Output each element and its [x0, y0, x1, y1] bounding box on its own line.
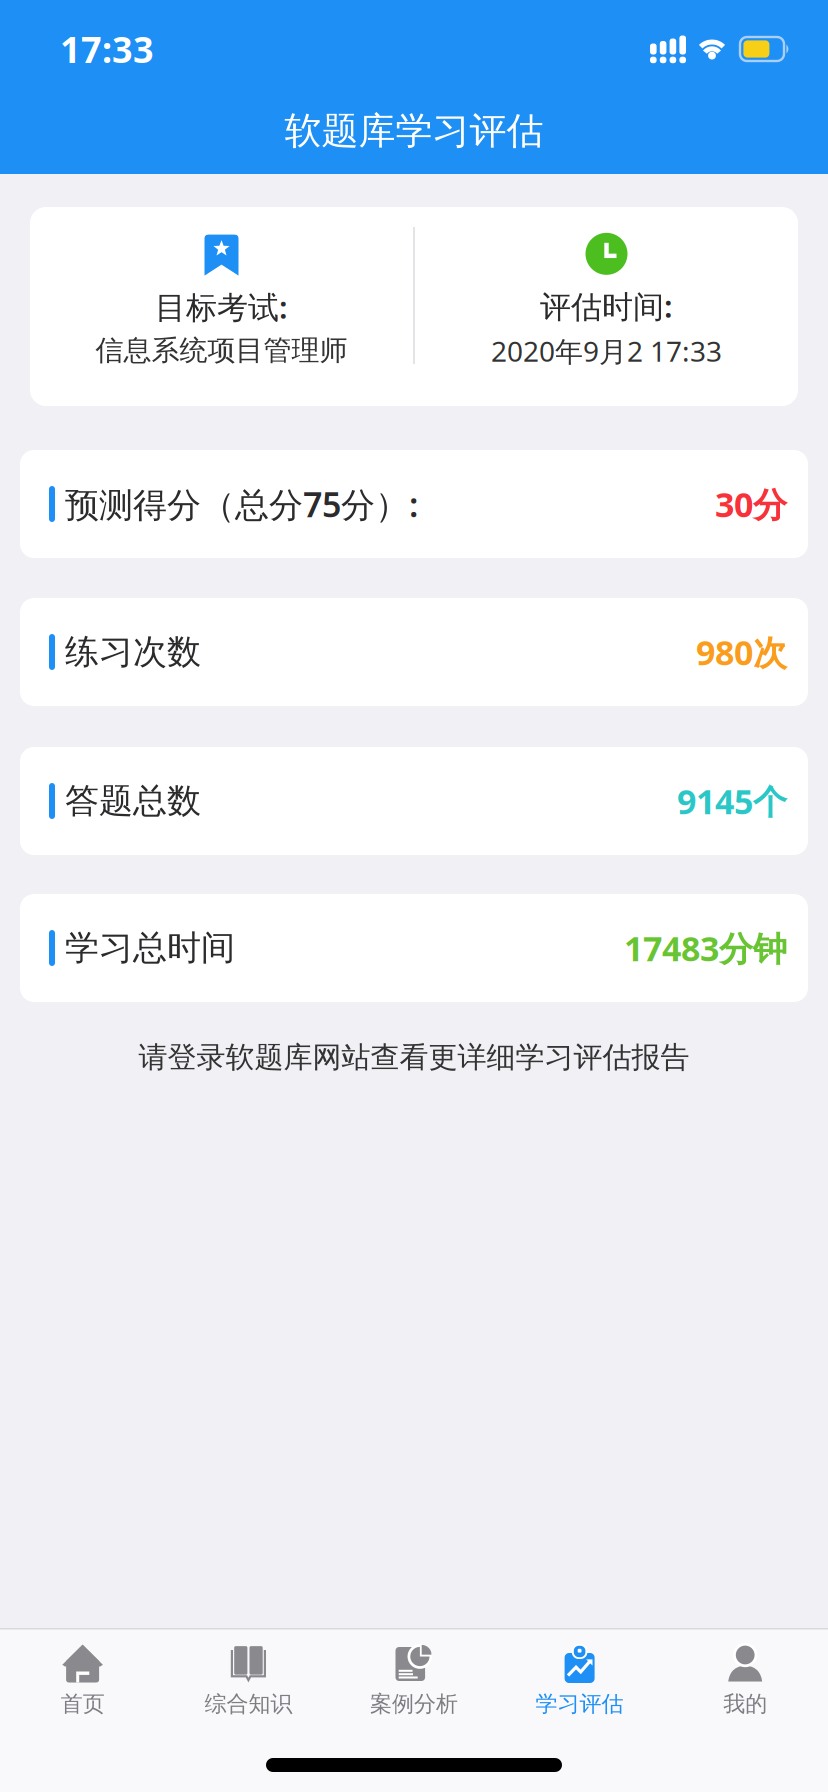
button[interactable]: 综合知识 [166, 1629, 331, 1716]
staticText: 案例分析 [370, 1691, 458, 1716]
staticText: 综合知识 [204, 1691, 292, 1716]
staticText: 评估时间: [540, 287, 673, 325]
staticText: 信息系统项目管理师 [95, 335, 347, 366]
staticText: 首页 [61, 1691, 105, 1716]
staticText: 2020年9月2 17:33 [491, 334, 722, 368]
staticText: 答题总数 [65, 782, 201, 820]
staticText: 17:33 [60, 27, 154, 71]
staticText: 请登录软题库网站查看更详细学习评估报告 [138, 1041, 689, 1074]
staticText: 学习总时间 [65, 929, 235, 967]
staticText: 30分 [715, 483, 787, 525]
button[interactable]: 首页 [0, 1629, 166, 1716]
button[interactable]: 我的 [662, 1629, 828, 1716]
staticText: 学习评估 [536, 1691, 624, 1716]
staticText: 980次 [696, 631, 787, 673]
staticText: 软题库学习评估 [284, 110, 543, 152]
button[interactable]: 案例分析 [331, 1629, 497, 1716]
staticText: 练习次数 [65, 633, 201, 671]
staticText: 预测得分（总分75分）: [65, 483, 418, 525]
staticText: 17483分钟 [624, 927, 787, 969]
staticText: 我的 [723, 1691, 767, 1716]
button[interactable]: 学习评估 [497, 1629, 662, 1716]
staticText: 9145个 [677, 780, 787, 822]
staticText: 目标考试: [155, 288, 288, 326]
